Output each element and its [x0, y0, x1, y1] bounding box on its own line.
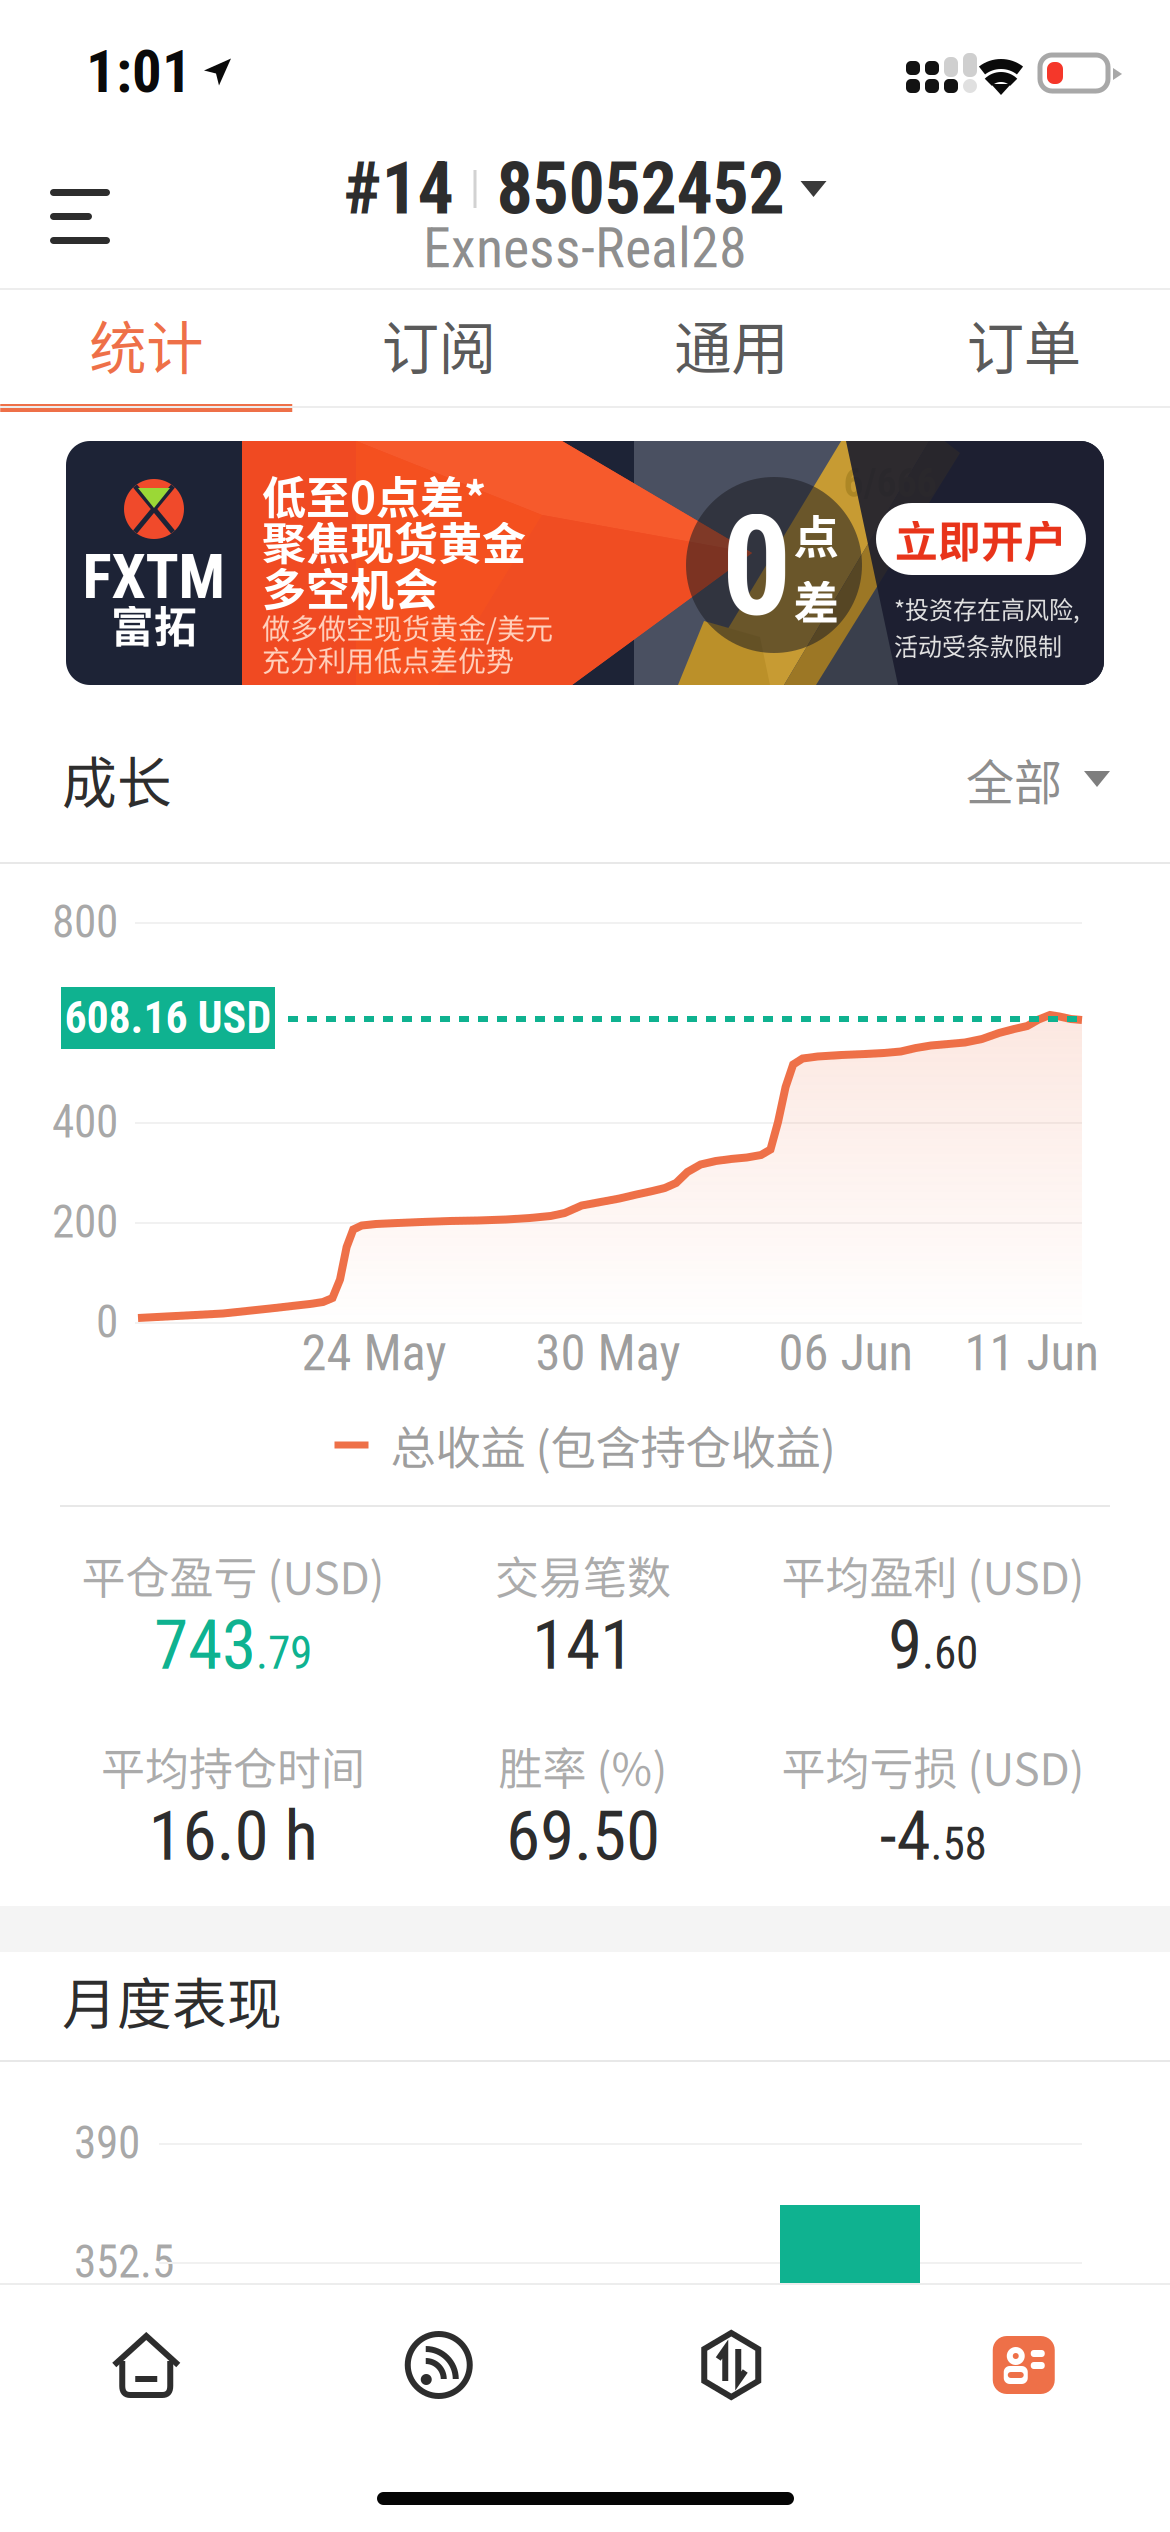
staticText: 充分利用低点差优势	[262, 639, 514, 679]
staticText: 0	[721, 486, 791, 648]
button[interactable]: 统计	[0, 290, 292, 408]
button[interactable]: 订单	[877, 290, 1170, 408]
button[interactable]: Menu	[10, 150, 150, 282]
staticText: 总收益 (包含持仓收益)	[390, 1412, 835, 1478]
staticText: 85052452	[496, 147, 784, 231]
staticText: 订阅	[382, 302, 496, 385]
staticText: 成长	[62, 739, 172, 819]
staticText: 立即开户	[895, 508, 1067, 570]
staticText: 全部	[966, 744, 1062, 814]
button[interactable]: Trade	[585, 2290, 877, 2440]
staticText: 200	[52, 1195, 118, 1248]
staticText: 30 May	[535, 1323, 680, 1383]
staticText: 743	[154, 1604, 256, 1686]
staticText: 交易笔数	[495, 1543, 671, 1607]
staticText: 点	[793, 501, 838, 567]
staticText: 1:01	[86, 38, 192, 106]
staticText: 多空机会	[262, 555, 438, 619]
staticText: 9	[888, 1604, 922, 1686]
staticText: 做多做空现货黄金/美元	[262, 607, 553, 647]
staticText: 800	[52, 895, 118, 948]
staticText: 胜率 (%)	[498, 1734, 667, 1798]
staticText: 活动受条款限制	[894, 628, 1062, 663]
staticText: #14	[343, 147, 453, 231]
staticText: 通用	[674, 302, 788, 385]
staticText: 聚焦现货黄金	[262, 509, 526, 573]
staticText: 低至0点差*	[262, 463, 486, 527]
staticText: 11 Jun	[964, 1323, 1099, 1383]
staticText: 24 May	[301, 1323, 446, 1383]
staticText: 06 Jun	[778, 1323, 913, 1383]
button[interactable]: Quotes	[292, 2290, 585, 2440]
staticText: Exness-Real28	[423, 215, 747, 281]
staticText: 平均盈利 (USD)	[781, 1543, 1084, 1607]
staticText: -4	[879, 1795, 930, 1877]
staticText: 月度表现	[62, 1960, 282, 2040]
staticText: .60	[922, 1627, 978, 1680]
staticText: 富拓	[111, 593, 197, 655]
button[interactable]: 全部	[966, 744, 1110, 814]
staticText: *投资存在高风险,	[894, 591, 1080, 626]
staticText: .58	[930, 1818, 986, 1871]
staticText: 352.5	[74, 2235, 174, 2288]
staticText: 608.16 USD	[64, 992, 271, 1044]
staticText: 平均持仓时间	[101, 1734, 365, 1798]
staticText: 6/666	[843, 460, 936, 506]
staticText: 统计	[89, 302, 203, 385]
staticText: 差	[793, 567, 838, 633]
button[interactable]: Home	[0, 2290, 292, 2440]
staticText: .79	[256, 1627, 312, 1680]
staticText: 141	[532, 1604, 634, 1686]
staticText: FXTM	[82, 541, 225, 613]
staticText: 69.50	[506, 1795, 660, 1877]
staticText: 订单	[967, 302, 1081, 385]
staticText: 平仓盈亏 (USD)	[81, 1543, 384, 1607]
staticText: 400	[52, 1095, 118, 1148]
staticText: 390	[74, 2116, 140, 2169]
button[interactable]: 通用	[585, 290, 877, 408]
button[interactable]: Accounts	[877, 2290, 1170, 2440]
button[interactable]: 订阅	[292, 290, 585, 408]
staticText: 平均亏损 (USD)	[781, 1734, 1084, 1798]
staticText: 0	[96, 1295, 118, 1348]
staticText: 16.0 h	[148, 1795, 317, 1877]
button[interactable]: FXTM promotion	[66, 441, 1104, 685]
